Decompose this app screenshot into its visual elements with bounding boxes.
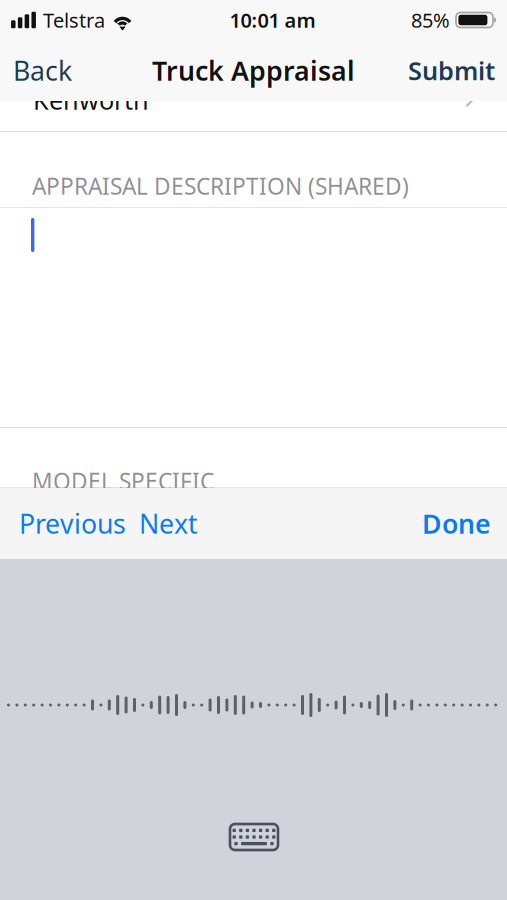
staticText: Telstra (43, 7, 105, 33)
staticText: 85% (411, 7, 450, 33)
staticText: Previous (19, 506, 126, 541)
staticText: APPRAISAL DESCRIPTION (SHARED) (32, 171, 409, 201)
staticText: Kenworth (33, 83, 149, 117)
button[interactable]: Back (0, 40, 85, 101)
button[interactable]: Submit (396, 40, 507, 101)
staticText: Next (139, 506, 198, 541)
staticText: 10:01 am (229, 7, 315, 33)
staticText: MODEL SPECIFIC (32, 466, 214, 496)
button[interactable]: Done (406, 488, 507, 559)
staticText: Truck Appraisal (152, 53, 355, 88)
staticText: Submit (408, 54, 495, 87)
button[interactable]: Next (131, 488, 206, 559)
button[interactable]: Show keyboard (210, 809, 298, 865)
staticText: Back (13, 53, 72, 88)
button[interactable]: Previous (0, 488, 131, 559)
staticText: Done (422, 506, 491, 541)
